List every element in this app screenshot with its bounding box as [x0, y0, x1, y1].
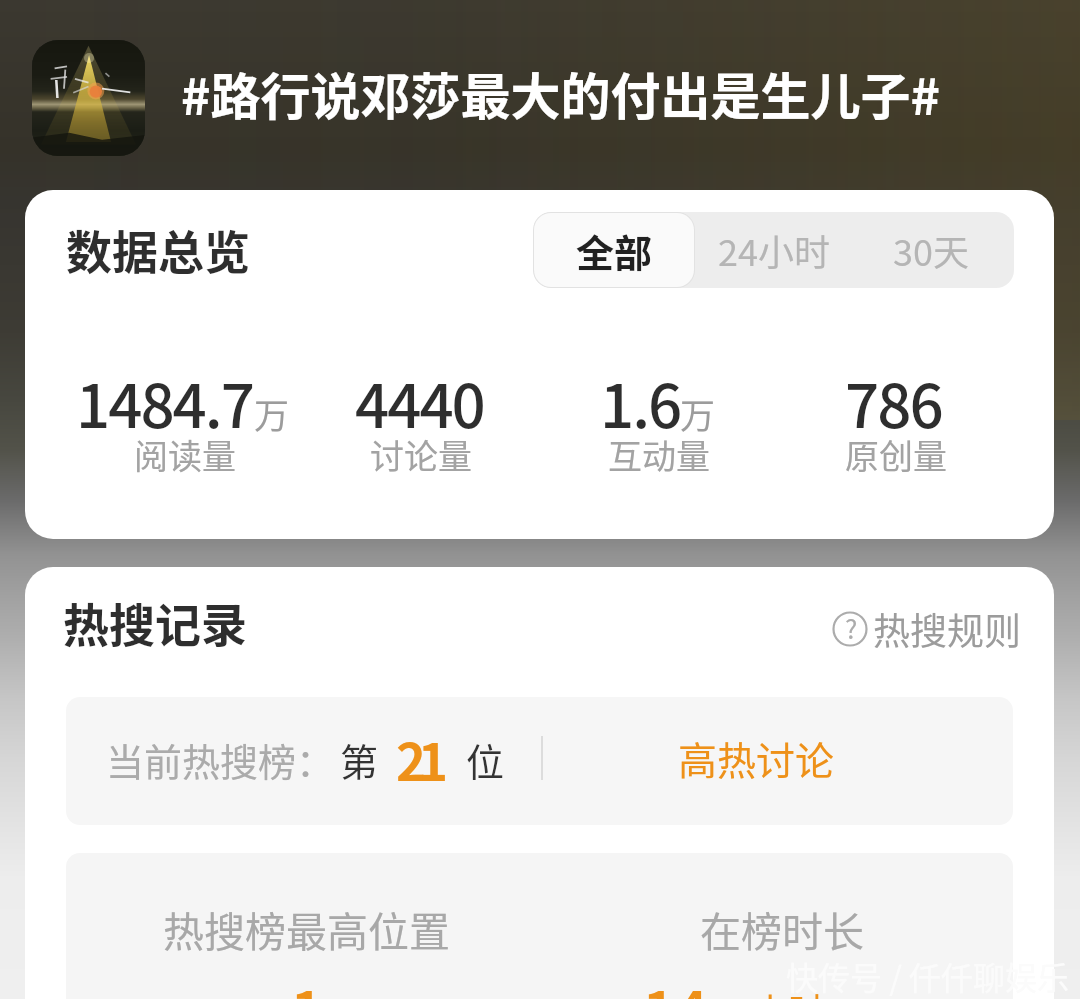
staticText: 小时 [752, 983, 825, 999]
staticText: 万 [680, 388, 716, 439]
button[interactable]: 热搜规则 Hot search rules [832, 602, 1029, 656]
staticText: 热搜记录 [63, 589, 247, 656]
staticText: 4440 [355, 358, 484, 445]
button[interactable]: Profile avatar [32, 40, 145, 156]
staticText: 21 [396, 722, 441, 796]
staticText: 1.6 [600, 358, 681, 445]
staticText: 全部 [576, 223, 653, 278]
button[interactable]: 24小时 [695, 212, 853, 288]
staticText: 1 [290, 965, 323, 999]
button[interactable]: 30天 [853, 212, 1008, 288]
button[interactable]: 全部 [534, 213, 694, 287]
staticText: 快传号 / 仟仟聊娱乐 [786, 953, 1069, 999]
staticText: 24小时 [718, 224, 830, 276]
staticText: ? [845, 609, 858, 647]
staticText: 热搜规则 [873, 602, 1021, 656]
staticText: 互动量 [608, 430, 710, 479]
staticText: 原创量 [845, 430, 947, 479]
staticText: 万 [254, 388, 290, 439]
staticText: #路行说邓莎最大的付出是生儿子# [181, 57, 940, 129]
staticText: 当前热搜榜： [106, 732, 335, 787]
staticText: 位 [466, 732, 505, 787]
staticText: 讨论量 [370, 430, 472, 479]
staticText: 第 [340, 732, 379, 787]
staticText: 数据总览 [66, 216, 250, 283]
staticText: 阅读量 [134, 430, 236, 479]
button[interactable]: 当前热搜榜： [66, 697, 1013, 825]
staticText: 14 [642, 965, 707, 999]
staticText: 786 [845, 358, 942, 445]
staticText: 热搜榜最高位置 [163, 899, 450, 958]
staticText: 30天 [893, 224, 969, 276]
staticText: 高热讨论 [678, 730, 835, 786]
staticText: 1484.7 [76, 358, 253, 445]
staticText: 在榜时长 [700, 899, 864, 958]
